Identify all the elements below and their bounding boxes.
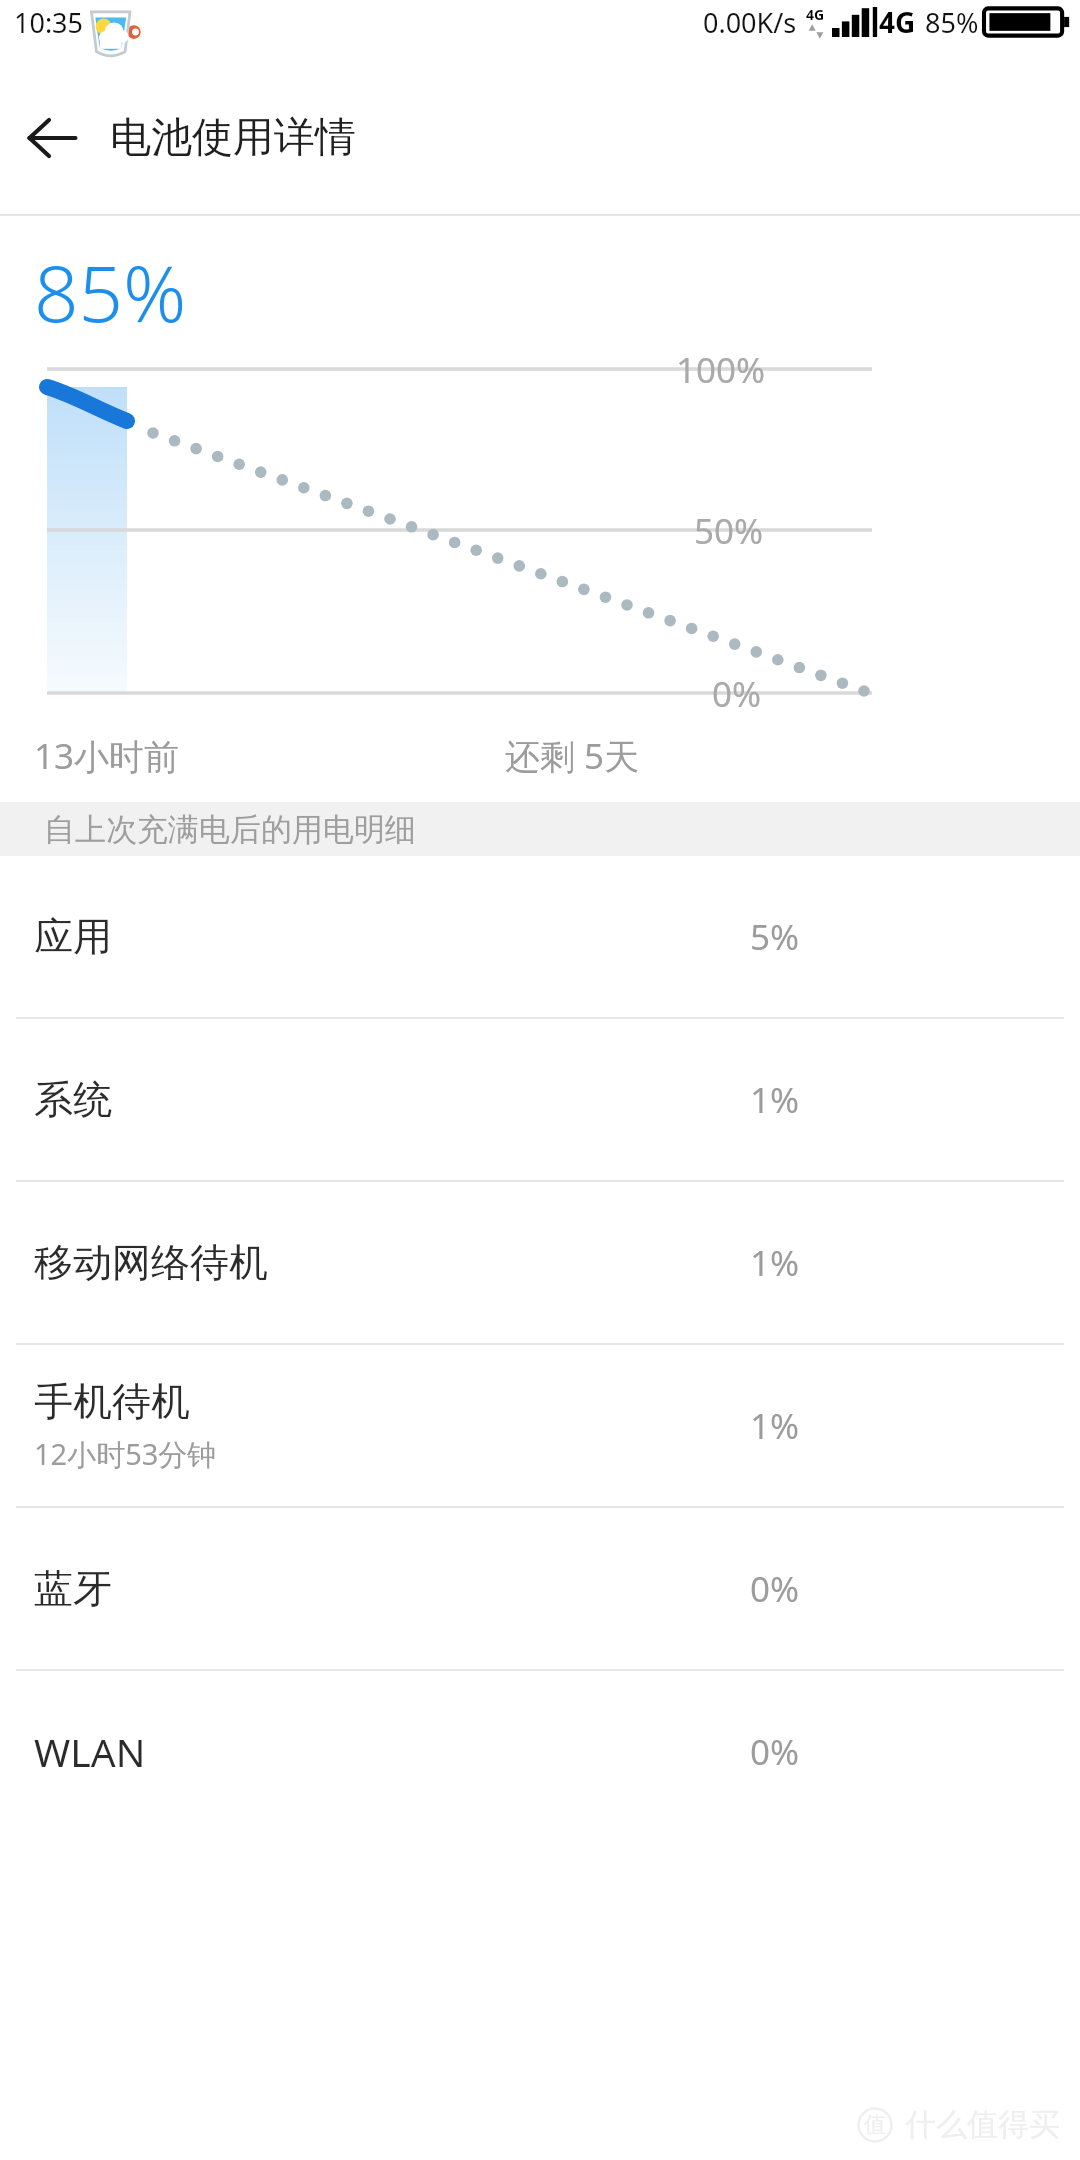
- button[interactable]: 系统: [0, 1019, 1080, 1180]
- staticText: 应用: [34, 912, 112, 961]
- staticText: 0%: [750, 1565, 800, 1613]
- staticText: 4G: [806, 5, 825, 24]
- staticText: 4G: [879, 3, 916, 41]
- button[interactable]: 手机待机: [0, 1345, 1080, 1506]
- staticText: 100%: [676, 346, 766, 394]
- staticText: 系统: [34, 1075, 112, 1124]
- staticText: 值: [864, 2111, 886, 2139]
- staticText: 蓝牙: [34, 1564, 112, 1613]
- staticText: 什么值得买: [905, 2105, 1060, 2144]
- staticText: 还剩 5天: [505, 732, 640, 780]
- button[interactable]: WLAN: [0, 1671, 1080, 1832]
- staticText: 1%: [750, 1239, 800, 1287]
- staticText: 0%: [750, 1728, 800, 1776]
- staticText: 85%: [925, 4, 979, 41]
- staticText: 85%: [34, 239, 187, 345]
- staticText: 10:35: [14, 4, 84, 41]
- staticText: 12小时53分钟: [34, 1434, 217, 1474]
- staticText: WLAN: [34, 1725, 146, 1778]
- staticText: 移动网络待机: [34, 1238, 268, 1287]
- button[interactable]: 蓝牙: [0, 1508, 1080, 1669]
- staticText: 手机待机: [34, 1377, 190, 1426]
- staticText: 1%: [750, 1076, 800, 1124]
- staticText: 0%: [712, 670, 762, 718]
- staticText: 自上次充满电后的用电明细: [44, 810, 416, 849]
- staticText: 0.00K/s: [703, 4, 797, 41]
- button[interactable]: 应用: [0, 856, 1080, 1017]
- staticText: 5%: [750, 913, 800, 961]
- staticText: 13小时前: [34, 732, 180, 780]
- staticText: 电池使用详情: [110, 112, 356, 164]
- staticText: 50%: [694, 507, 764, 555]
- button[interactable]: 移动网络待机: [0, 1182, 1080, 1343]
- staticText: 1%: [750, 1402, 800, 1450]
- button[interactable]: Back: [12, 98, 92, 178]
